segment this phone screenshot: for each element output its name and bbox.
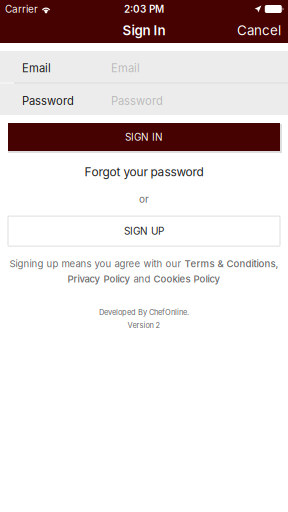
staticText: Cancel bbox=[237, 22, 281, 38]
staticText: Password bbox=[22, 94, 74, 108]
staticText: Privacy Policy and Cookies Policy bbox=[67, 273, 220, 285]
staticText: Email bbox=[22, 61, 51, 75]
staticText: Version 2 bbox=[127, 321, 160, 330]
button[interactable]: Password bbox=[0, 83, 288, 115]
staticText: Password bbox=[111, 94, 163, 108]
staticText: SIGN IN bbox=[125, 131, 163, 143]
button[interactable]: SIGN UP bbox=[8, 216, 280, 246]
staticText: or bbox=[139, 193, 149, 205]
staticText: SIGN UP bbox=[124, 225, 164, 237]
staticText: 2:03 PM bbox=[124, 3, 164, 15]
staticText: Sign In bbox=[122, 22, 165, 38]
staticText: Developed By ChefOnline. bbox=[99, 308, 189, 317]
button[interactable]: SIGN IN bbox=[8, 123, 280, 151]
staticText: Signing up means you agree with our Term… bbox=[9, 258, 278, 269]
staticText: Forgot your password bbox=[84, 165, 203, 179]
staticText: Carrier bbox=[5, 3, 38, 15]
button[interactable]: Privacy Policy and Cookies Policy bbox=[67, 273, 220, 285]
button[interactable]: Forgot your password bbox=[8, 161, 280, 183]
button[interactable]: Email bbox=[0, 51, 288, 83]
button[interactable]: Cancel bbox=[237, 18, 288, 43]
button[interactable]: Signing up means you agree with our Term… bbox=[9, 258, 278, 269]
staticText: Email bbox=[111, 61, 140, 75]
